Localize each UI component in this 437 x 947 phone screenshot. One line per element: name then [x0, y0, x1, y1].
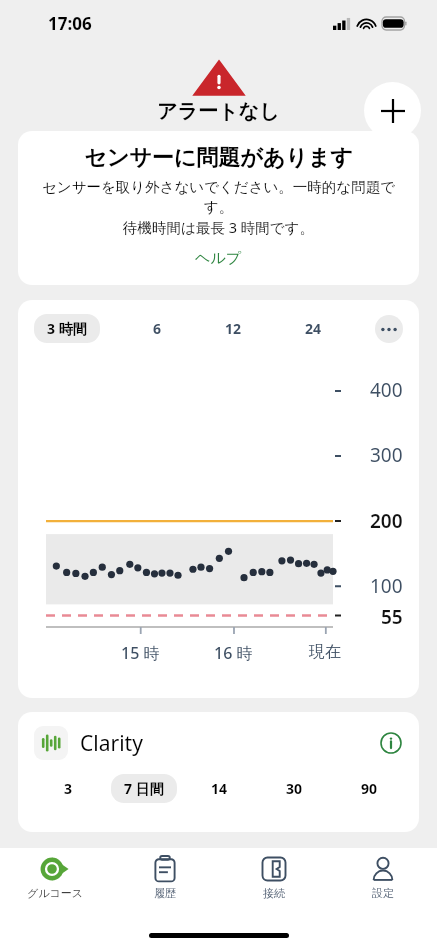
- staticText: 7 日間: [124, 779, 164, 798]
- staticText: 15 時: [121, 642, 160, 664]
- staticText: 300: [370, 442, 403, 468]
- button[interactable]: Add event: [364, 82, 421, 139]
- staticText: 55: [381, 604, 403, 630]
- staticText: 100: [370, 573, 403, 599]
- staticText: 16 時: [214, 642, 253, 664]
- staticText: 17:06: [48, 12, 92, 35]
- button[interactable]: 12: [215, 314, 252, 343]
- staticText: 設定: [372, 886, 394, 900]
- button[interactable]: グルコース: [0, 854, 110, 910]
- staticText: ヘルプ: [195, 249, 242, 268]
- staticText: 6: [153, 319, 162, 338]
- staticText: 12: [225, 319, 242, 338]
- staticText: Clarity: [80, 729, 143, 758]
- staticText: 30: [286, 779, 303, 798]
- staticText: 400: [370, 377, 403, 403]
- staticText: グルコース: [27, 886, 84, 900]
- staticText: 200: [370, 508, 403, 534]
- button[interactable]: 6: [143, 314, 172, 343]
- staticText: 3: [64, 779, 73, 798]
- button[interactable]: Information: [379, 731, 403, 755]
- button[interactable]: 3 時間: [34, 314, 100, 343]
- button[interactable]: 24: [295, 314, 332, 343]
- staticText: アラートなし: [157, 99, 280, 124]
- button[interactable]: 設定: [328, 854, 437, 910]
- staticText: 3 時間: [47, 319, 87, 338]
- button[interactable]: 7 日間: [111, 774, 177, 803]
- button[interactable]: 90: [351, 774, 388, 803]
- button[interactable]: 14: [201, 774, 238, 803]
- staticText: 14: [211, 779, 228, 798]
- button[interactable]: 30: [276, 774, 313, 803]
- button[interactable]: 接続: [219, 854, 328, 910]
- staticText: 現在: [309, 642, 341, 662]
- staticText: 接続: [263, 886, 285, 900]
- button[interactable]: センサーに問題があります: [18, 131, 419, 285]
- staticText: 履歴: [154, 886, 176, 900]
- button[interactable]: More options: [375, 315, 403, 343]
- staticText: センサーを取り外さないでください。一時的な問題です。 待機時間は最長 3 時間で…: [32, 178, 405, 237]
- button[interactable]: 3: [54, 774, 83, 803]
- button[interactable]: ヘルプ: [191, 245, 246, 272]
- staticText: 90: [361, 779, 378, 798]
- staticText: 24: [305, 319, 322, 338]
- staticText: センサーに問題があります: [84, 144, 353, 172]
- button[interactable]: 履歴: [110, 854, 219, 910]
